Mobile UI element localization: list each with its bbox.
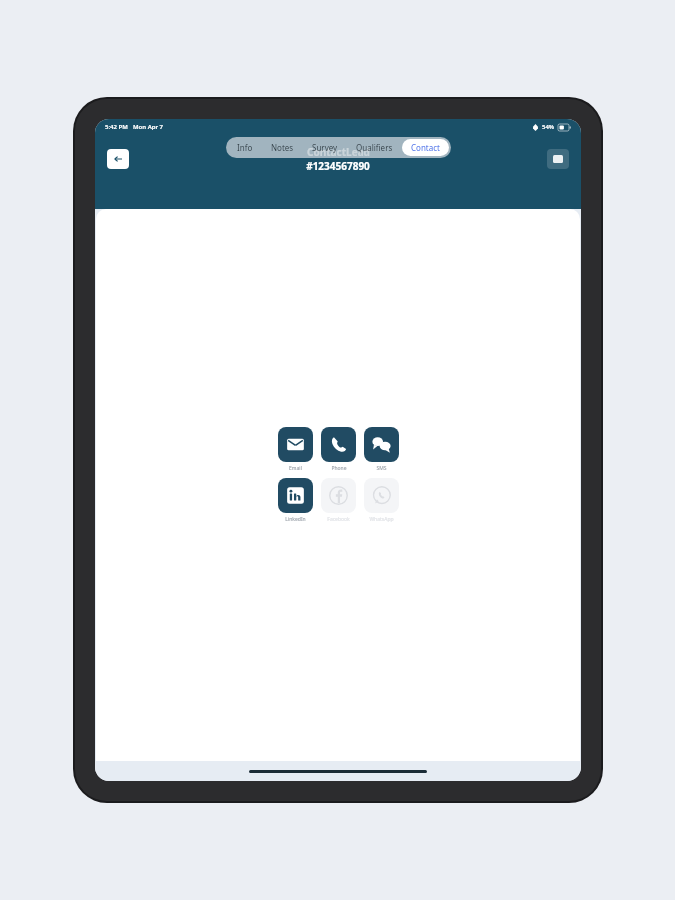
staticText: Facebook [327,516,350,523]
staticText: 54% [542,123,555,131]
staticText: Info [237,142,253,153]
staticText: 5:42 PM [105,123,128,131]
staticText: Mon Apr 7 [133,123,164,131]
button[interactable]: Notes [262,139,303,156]
staticText: Contact [411,142,440,153]
staticText: SMS [376,465,387,472]
staticText: #1234567890 [306,159,370,173]
staticText: Qualifiers [356,142,393,153]
button[interactable]: SMS [364,427,399,472]
button[interactable]: Survey [303,139,347,156]
button[interactable]: Email [278,427,313,472]
staticText: LinkedIn [285,516,306,523]
staticText: Phone [331,465,347,472]
button[interactable]: Contact [402,139,449,156]
button[interactable]: WhatsApp [364,478,399,523]
button[interactable]: Qualifiers [347,139,402,156]
staticText: Survey [312,142,338,153]
button[interactable]: Facebook [321,478,356,523]
button[interactable]: Menu [547,149,569,169]
button[interactable]: LinkedIn [278,478,313,523]
button[interactable]: Info [228,139,262,156]
button[interactable]: Back [107,149,129,169]
staticText: WhatsApp [369,516,394,523]
staticText: Notes [271,142,294,153]
button[interactable]: Phone [321,427,356,472]
staticText: ContactLead [307,145,370,159]
staticText: Email [289,465,302,472]
